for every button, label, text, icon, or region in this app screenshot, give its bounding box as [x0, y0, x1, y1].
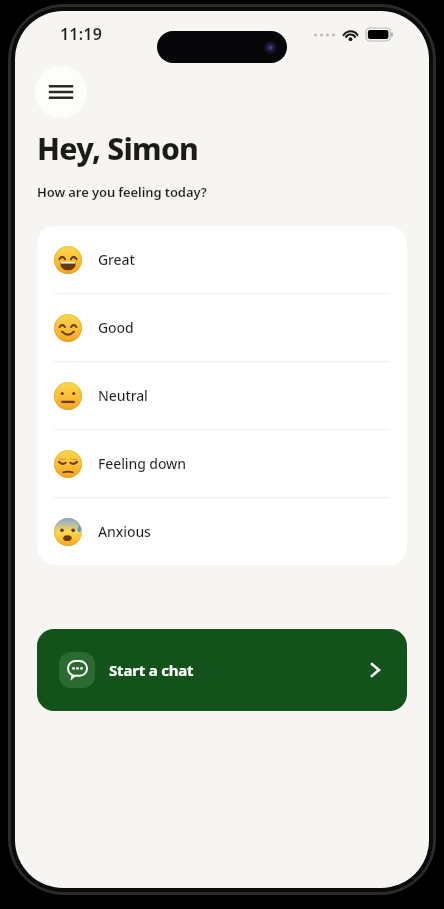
staticText: 11:19 — [60, 23, 103, 45]
button[interactable]: Anxious — [37, 498, 407, 565]
button[interactable]: Feeling down — [37, 430, 407, 497]
button[interactable]: Neutral — [37, 362, 407, 429]
button[interactable]: Good — [37, 294, 407, 361]
staticText: Anxious — [98, 522, 151, 541]
staticText: Hey, Simon — [37, 128, 199, 169]
staticText: Start a chat — [109, 660, 194, 680]
staticText: Feeling down — [98, 454, 186, 473]
button[interactable]: Start a chat — [37, 629, 407, 711]
staticText: Good — [98, 318, 134, 337]
staticText: Neutral — [98, 386, 148, 405]
button[interactable]: Great — [37, 226, 407, 293]
button[interactable]: Menu — [35, 66, 87, 118]
staticText: Great — [98, 250, 135, 269]
staticText: How are you feeling today? — [37, 183, 207, 201]
